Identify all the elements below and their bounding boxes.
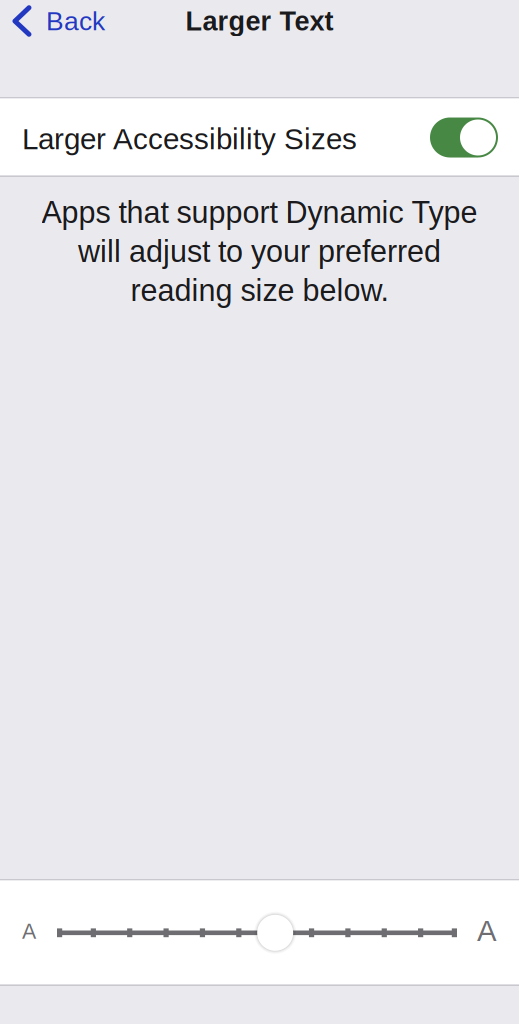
button[interactable]: Back	[0, 0, 115, 42]
button[interactable]: Larger Accessibility Sizes	[0, 98, 519, 175]
staticText: Apps that support Dynamic Type	[41, 195, 477, 229]
staticText: Larger Accessibility Sizes	[22, 122, 357, 156]
staticText: Back	[46, 6, 105, 36]
button[interactable]: Text size	[0, 880, 519, 984]
staticText: A	[22, 919, 36, 943]
staticText: A	[477, 914, 497, 947]
staticText: Larger Text	[185, 6, 333, 36]
staticText: will adjust to your preferred	[78, 234, 441, 268]
staticText: reading size below.	[130, 273, 388, 307]
